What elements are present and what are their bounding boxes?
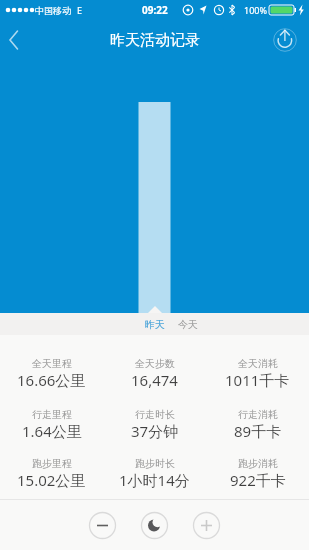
button[interactable] bbox=[193, 512, 220, 539]
staticText: 922千卡 bbox=[230, 470, 286, 490]
staticText: 15.02公里 bbox=[17, 470, 86, 490]
button[interactable] bbox=[271, 26, 299, 54]
button[interactable] bbox=[0, 20, 28, 60]
staticText: 37分钟 bbox=[131, 421, 179, 441]
staticText: 1.64公里 bbox=[22, 421, 82, 441]
staticText: 行走里程 bbox=[32, 408, 72, 421]
staticText: 中国移动 bbox=[35, 5, 71, 16]
staticText: 昨天 bbox=[145, 318, 165, 331]
staticText: 09:22 bbox=[142, 3, 168, 17]
staticText: 今天 bbox=[178, 318, 198, 331]
staticText: 1小时14分 bbox=[119, 470, 190, 490]
staticText: 1011千卡 bbox=[225, 370, 290, 390]
button[interactable]: 今天 bbox=[171, 313, 205, 335]
button[interactable] bbox=[89, 512, 116, 539]
staticText: 89千卡 bbox=[234, 421, 282, 441]
staticText: 行走时长 bbox=[135, 408, 175, 421]
staticText: 全天消耗 bbox=[238, 357, 278, 370]
staticText: 跑步时长 bbox=[135, 457, 175, 470]
staticText: 全天里程 bbox=[32, 357, 72, 370]
staticText: 全天步数 bbox=[135, 357, 175, 370]
staticText: 昨天活动记录 bbox=[110, 31, 200, 50]
staticText: 100% bbox=[244, 4, 267, 16]
staticText: 16,474 bbox=[131, 370, 178, 390]
button[interactable]: 昨天 bbox=[138, 313, 172, 335]
staticText: 跑步里程 bbox=[32, 457, 72, 470]
staticText: 跑步消耗 bbox=[238, 457, 278, 470]
staticText: E bbox=[77, 4, 83, 16]
staticText: 行走消耗 bbox=[238, 408, 278, 421]
staticText: 16.66公里 bbox=[17, 370, 86, 390]
button[interactable] bbox=[141, 512, 168, 539]
